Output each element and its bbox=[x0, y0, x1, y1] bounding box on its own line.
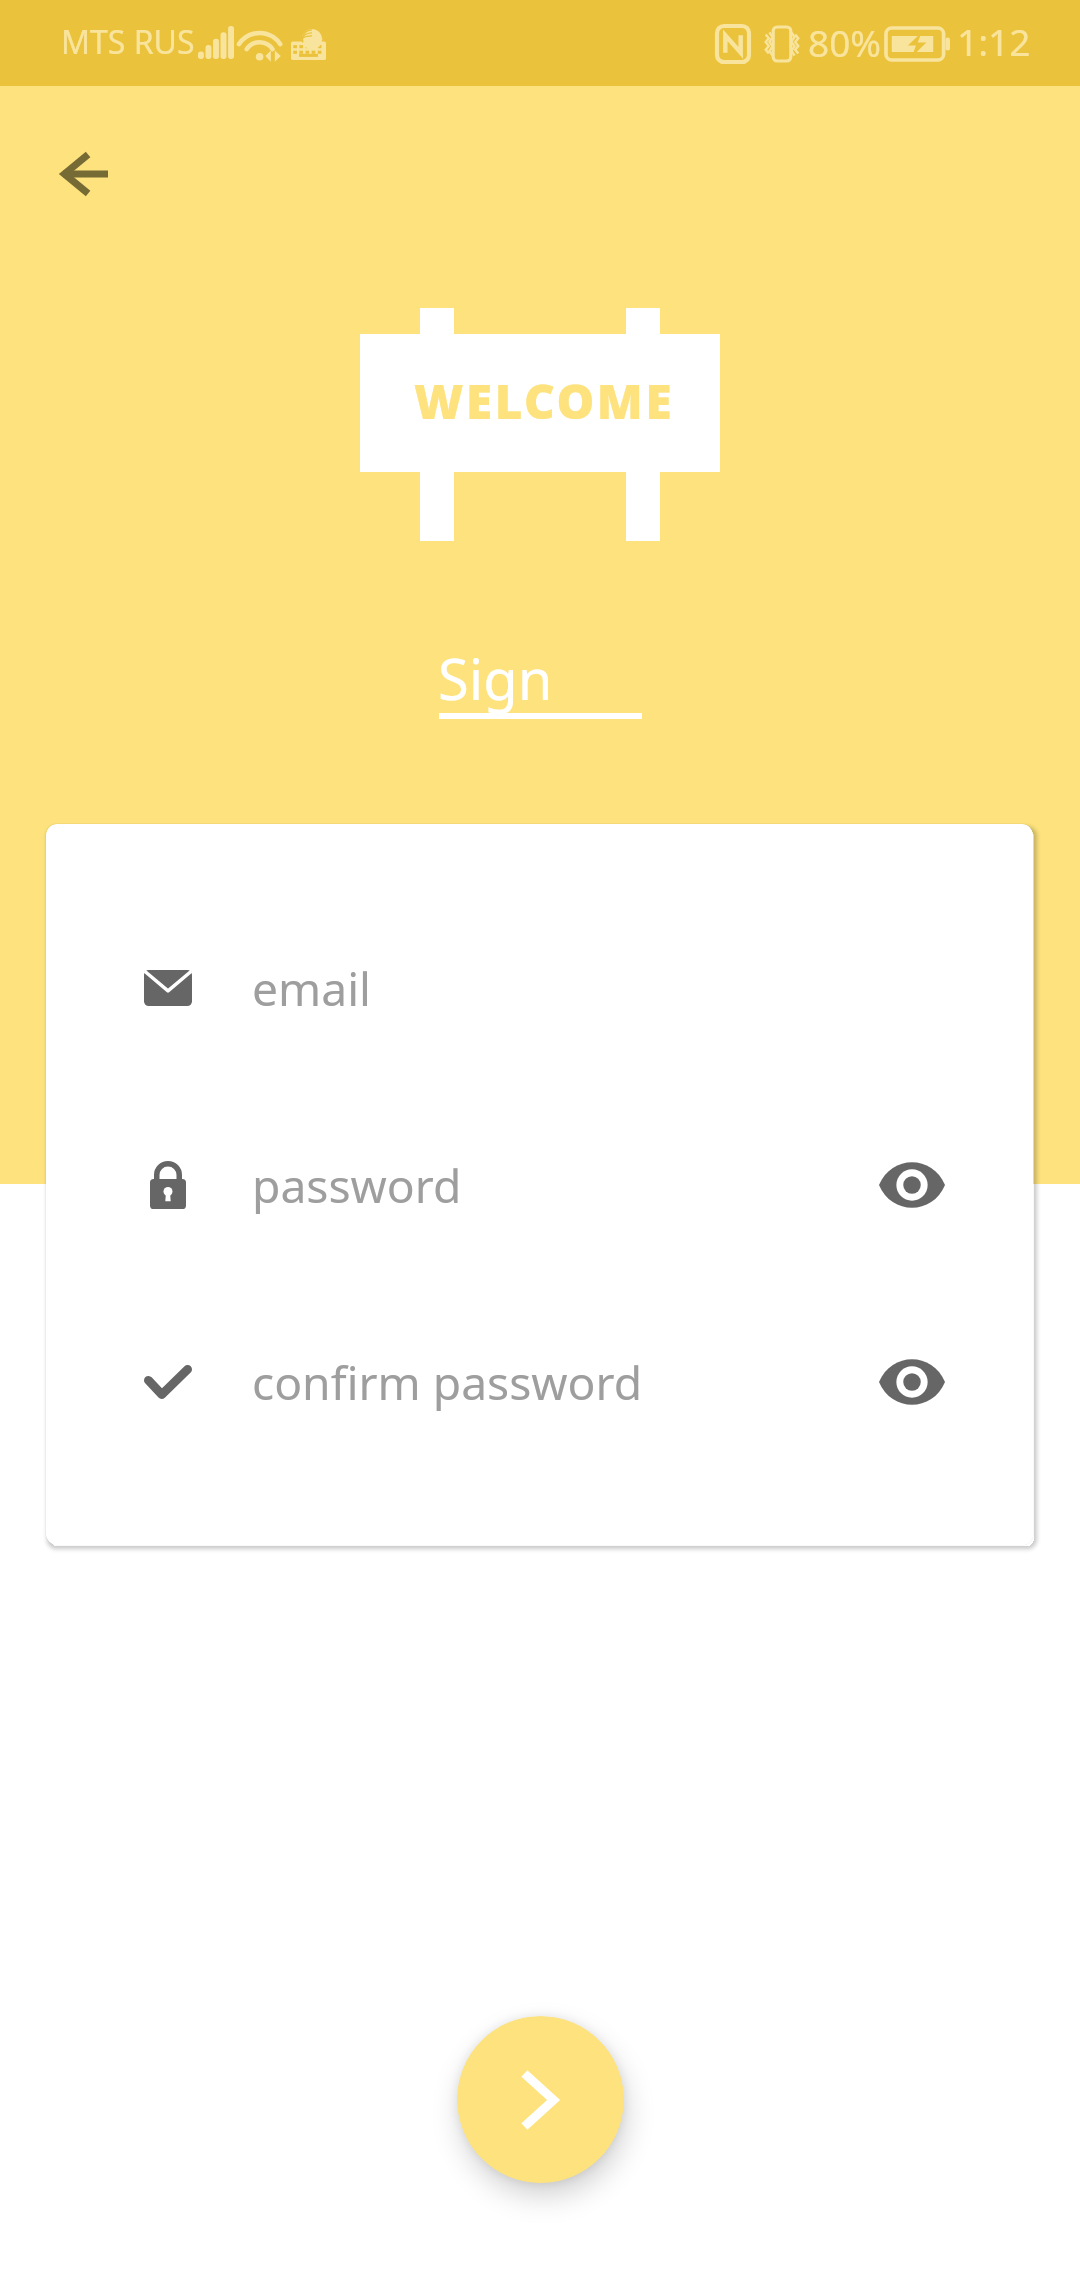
button[interactable]: Show password bbox=[846, 1332, 978, 1432]
staticText: email bbox=[252, 957, 371, 1020]
button[interactable]: Next bbox=[457, 2016, 624, 2183]
staticText: 1:12 bbox=[957, 16, 1031, 66]
button[interactable]: Show password bbox=[846, 1135, 978, 1235]
button[interactable]: password bbox=[46, 1125, 1033, 1245]
button[interactable]: Sign Up bbox=[438, 640, 642, 720]
button[interactable]: email bbox=[46, 928, 1033, 1048]
staticText: password bbox=[252, 1154, 462, 1217]
button[interactable]: confirm password bbox=[46, 1322, 1033, 1442]
staticText: MTS RUS bbox=[61, 20, 195, 64]
button[interactable]: Back bbox=[36, 126, 132, 222]
staticText: Sign Up bbox=[438, 640, 642, 720]
staticText: confirm password bbox=[252, 1351, 643, 1414]
staticText: WELCOME bbox=[414, 368, 675, 433]
staticText: 80% bbox=[808, 17, 882, 67]
